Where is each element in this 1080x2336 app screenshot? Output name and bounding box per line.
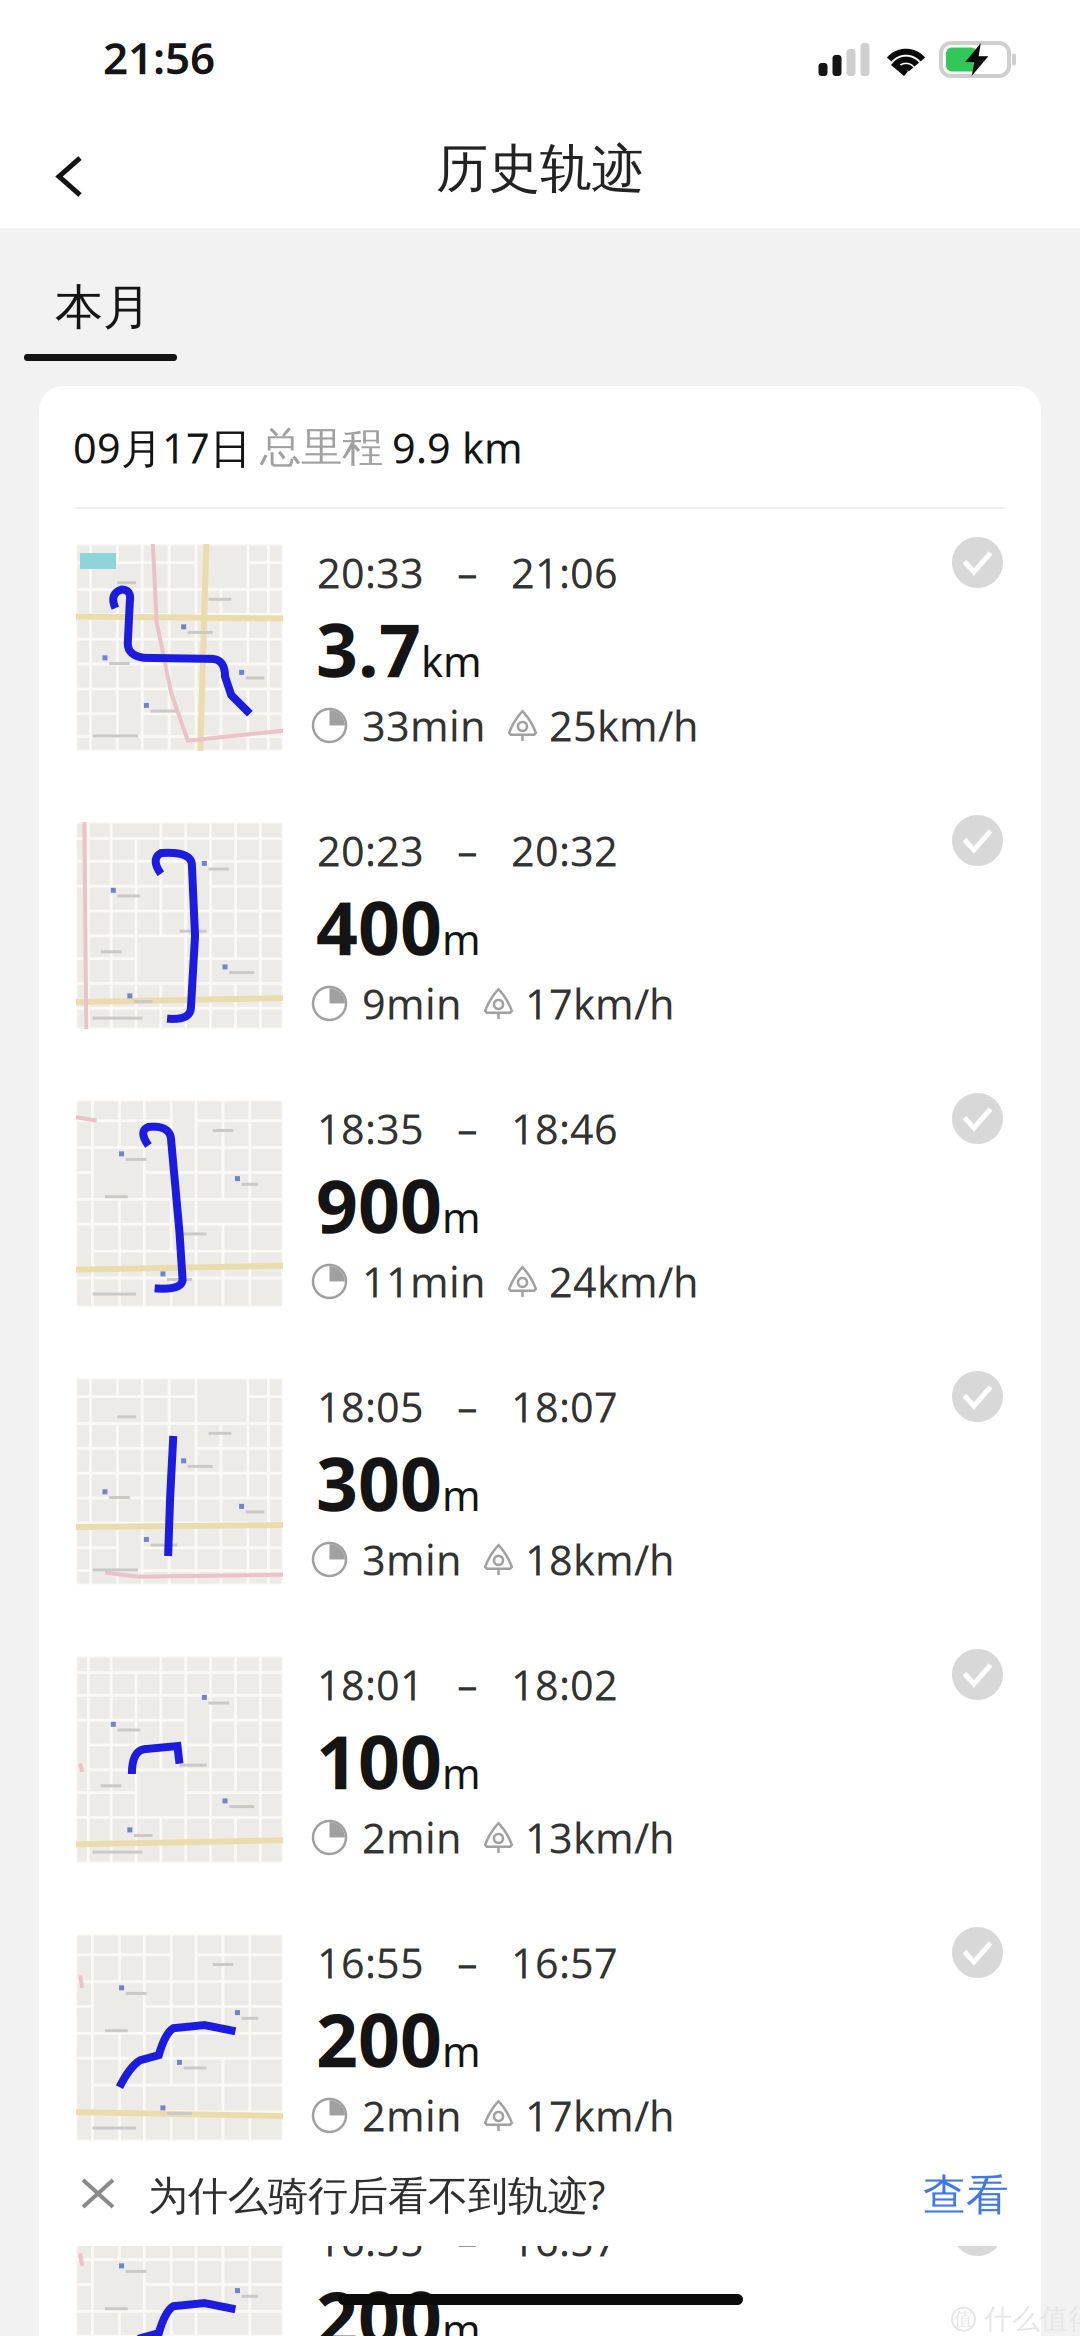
staticText: 100 <box>316 1712 442 1809</box>
staticText: m <box>442 911 481 966</box>
staticText: 17km/h <box>525 2088 675 2143</box>
staticText: m <box>442 2023 481 2078</box>
staticText: 200 <box>316 2268 442 2336</box>
staticText: km <box>421 633 482 688</box>
staticText: 18:05 – 18:07 <box>317 1379 618 1434</box>
staticText: 300 <box>316 1434 442 1531</box>
staticText: 25km/h <box>549 698 699 753</box>
staticText: 20:33 – 21:06 <box>317 545 618 600</box>
staticText: 09月17日 <box>73 420 251 475</box>
staticText: 历史轨迹 <box>436 137 644 201</box>
staticText: m <box>442 1467 481 1522</box>
staticText: 18:35 – 18:46 <box>317 1101 618 1156</box>
staticText: 17km/h <box>525 976 675 1031</box>
staticText: 18:01 – 18:02 <box>317 1657 618 1712</box>
staticText: m <box>442 1745 481 1800</box>
staticText: 21:56 <box>103 28 215 86</box>
staticText: 16:55 – 16:57 <box>317 2213 618 2268</box>
button[interactable]: 16:55 – 16:57 <box>39 1899 1041 2177</box>
button[interactable]: 本月 <box>24 268 177 376</box>
staticText: 什么值得买 <box>984 2302 1080 2336</box>
staticText: 为什么骑行后看不到轨迹? <box>148 2168 605 2221</box>
staticText: 3.7 <box>316 600 421 697</box>
staticText: m <box>442 2301 481 2336</box>
button[interactable]: 20:33 – 21:06 <box>39 509 1041 787</box>
staticText: 查看 <box>923 2169 1009 2221</box>
staticText: 24km/h <box>549 1254 699 1309</box>
staticText: 18km/h <box>525 1532 675 1587</box>
staticText: 400 <box>316 878 442 975</box>
button[interactable]: 返回 <box>18 130 118 223</box>
button[interactable]: 16:55 – 16:57 <box>39 2177 1041 2336</box>
button[interactable]: 18:05 – 18:07 <box>39 1343 1041 1621</box>
staticText: 总里程 <box>260 422 383 473</box>
staticText: 2min <box>362 2088 462 2143</box>
staticText: 16:55 – 16:57 <box>317 1935 618 1990</box>
staticText: 20:23 – 20:32 <box>317 823 618 878</box>
button[interactable]: 查看 <box>885 2137 1047 2253</box>
button[interactable]: 18:01 – 18:02 <box>39 1621 1041 1899</box>
staticText: 900 <box>316 1156 442 1253</box>
staticText: m <box>442 1189 481 1244</box>
staticText: 200 <box>316 1990 442 2087</box>
button[interactable]: 18:35 – 18:46 <box>39 1065 1041 1343</box>
staticText: 33min <box>362 698 486 753</box>
staticText: 11min <box>362 1254 486 1309</box>
staticText: 值 <box>954 2308 973 2331</box>
button[interactable]: 关闭 <box>54 2142 142 2245</box>
staticText: 13km/h <box>525 1810 675 1865</box>
staticText: 本月 <box>55 278 151 337</box>
staticText: 9.9 km <box>392 420 523 475</box>
button[interactable]: 20:23 – 20:32 <box>39 787 1041 1065</box>
staticText: 2min <box>362 1810 462 1865</box>
staticText: 9min <box>362 976 462 1031</box>
staticText: 3min <box>362 1532 462 1587</box>
